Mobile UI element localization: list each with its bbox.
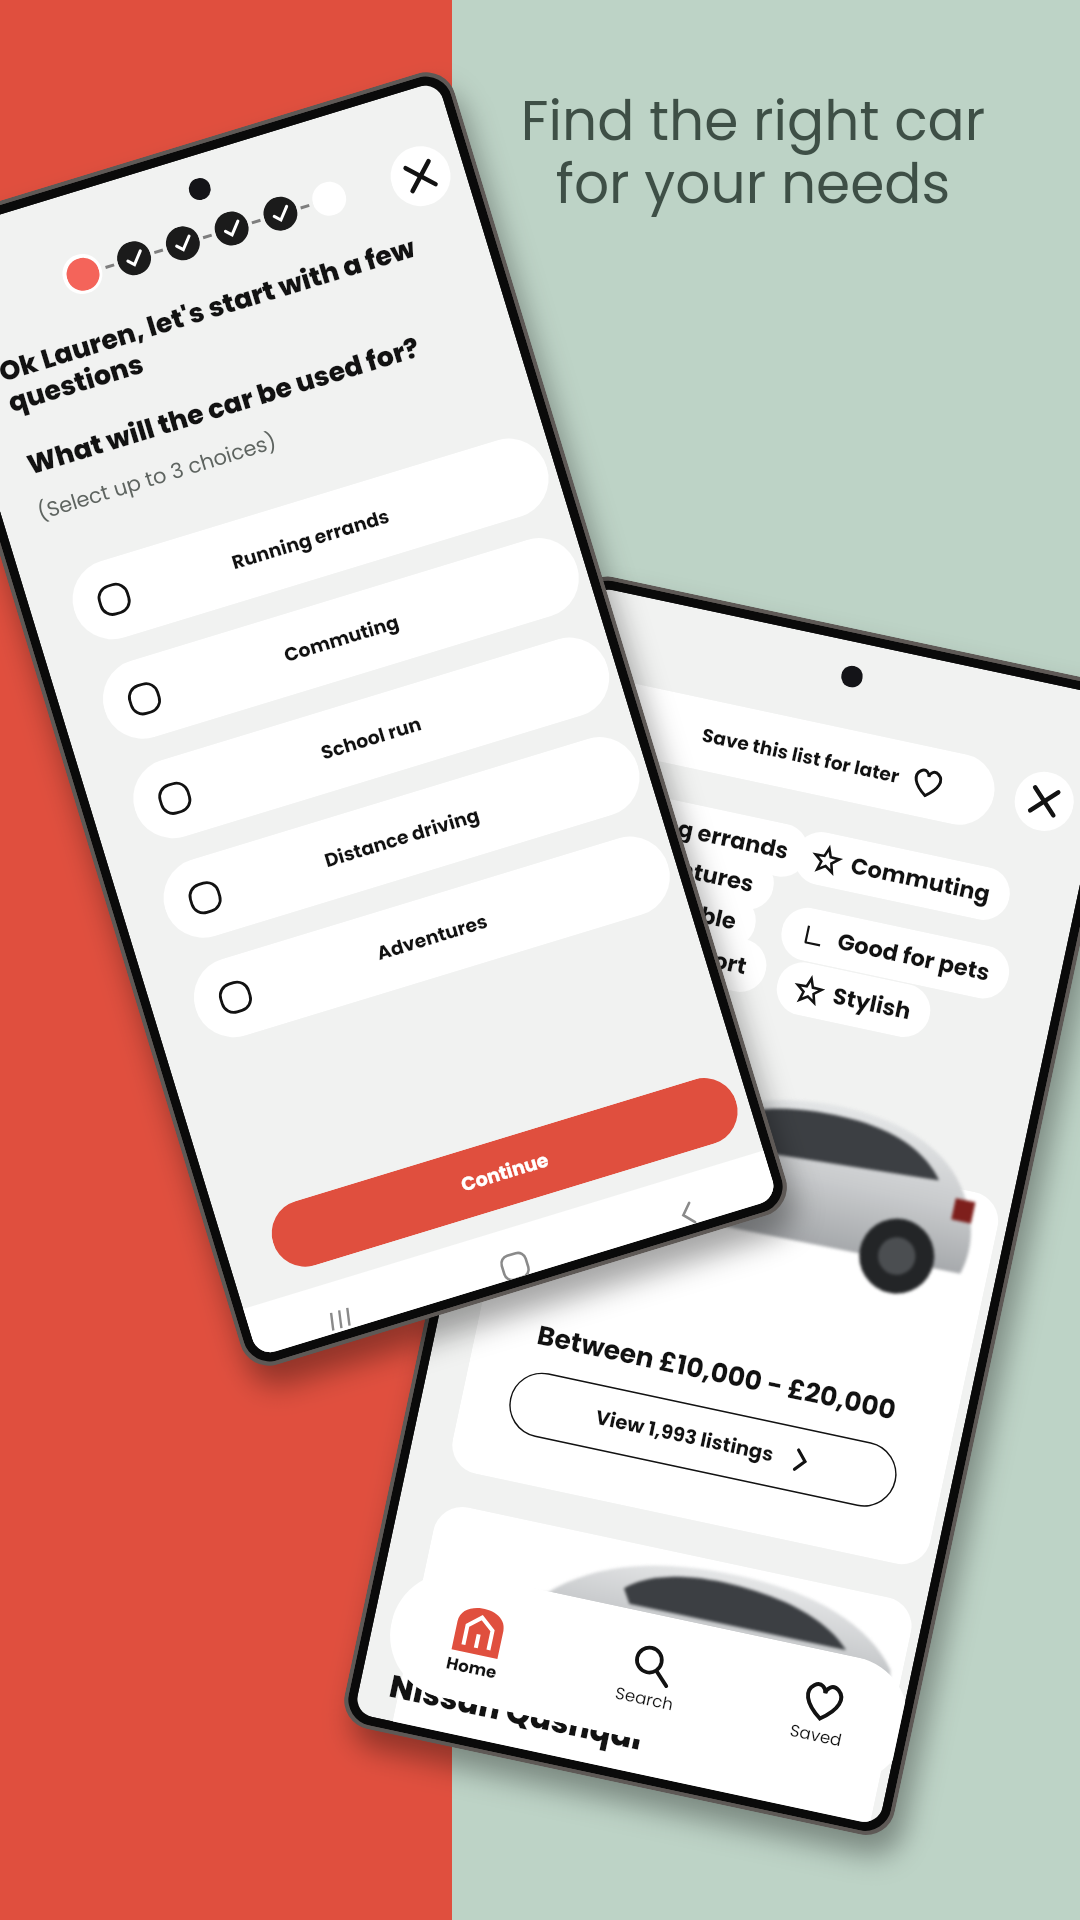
staticText: Running errands <box>228 503 393 576</box>
staticText: Adventures <box>373 908 491 967</box>
button[interactable]: Save this list for later <box>562 671 1001 831</box>
button[interactable]: Comfort <box>626 916 771 997</box>
staticText: Between £10,000 - £20,000 <box>534 1316 900 1430</box>
staticText: Commuting <box>281 608 402 669</box>
staticText: Running errands <box>594 795 792 867</box>
staticText: Home <box>444 1651 499 1685</box>
button[interactable]: Close <box>1009 766 1079 836</box>
staticText: View 1,993 listings <box>593 1403 776 1468</box>
button[interactable]: Search <box>550 1597 748 1757</box>
button[interactable]: Adventures <box>595 826 779 915</box>
staticText: What will the car be used for? <box>22 301 516 484</box>
staticText: (Select up to 3 choices) <box>34 426 280 527</box>
button[interactable]: View 1,993 listings <box>503 1367 903 1513</box>
staticText: Find the right car for your needs <box>439 82 1067 222</box>
staticText: Continue <box>458 1146 553 1198</box>
button[interactable]: Saved <box>722 1634 912 1793</box>
staticText: Search <box>613 1681 676 1716</box>
staticText: Adventures <box>617 840 757 900</box>
button[interactable]: School run <box>123 628 619 848</box>
staticText: Commuting <box>848 849 993 910</box>
button[interactable]: Running errands <box>63 429 558 649</box>
staticText: Saved <box>788 1718 845 1752</box>
button[interactable]: Distance driving <box>154 727 649 948</box>
button[interactable]: Adventures <box>184 827 680 1047</box>
staticText: Distance driving <box>321 801 483 874</box>
staticText: Ok Lauren, let's start with a few questi… <box>0 208 497 422</box>
button[interactable]: Good for pets <box>776 903 1014 1003</box>
button[interactable]: Stylish <box>772 957 935 1042</box>
staticText: Reliable <box>641 887 739 938</box>
staticText: School run <box>318 710 425 766</box>
staticText: Save this list for later <box>699 722 902 790</box>
staticText: Nissan Qashqai <box>385 1663 647 1761</box>
button[interactable]: Home <box>378 1560 576 1721</box>
button[interactable]: Running errands <box>572 780 813 882</box>
button[interactable]: Commuting <box>93 528 589 749</box>
button[interactable]: Continue <box>263 1070 746 1275</box>
button[interactable]: Reliable <box>619 872 761 952</box>
staticText: Stylish <box>830 980 914 1027</box>
button[interactable]: Close <box>383 139 458 214</box>
staticText: Good for pets <box>834 925 993 989</box>
button[interactable]: Commuting <box>789 827 1015 925</box>
staticText: Comfort <box>648 931 750 982</box>
